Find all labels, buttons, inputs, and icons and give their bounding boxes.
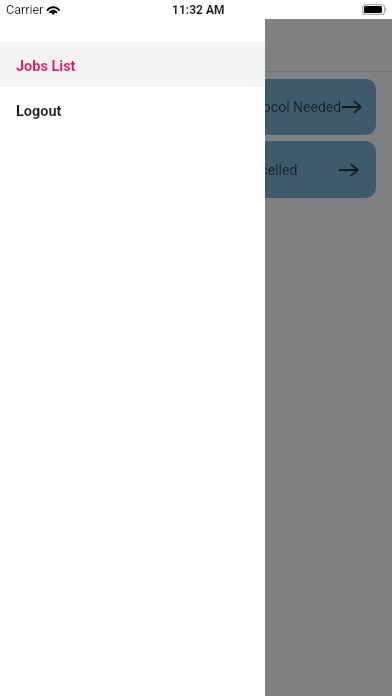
button[interactable]: Jobs List <box>0 42 265 87</box>
staticText: 11:32 AM <box>172 3 225 17</box>
button[interactable]: Logout <box>0 87 265 132</box>
staticText: Jobs List <box>16 58 76 75</box>
staticText: Logout <box>16 103 62 120</box>
button[interactable]: Cancelled <box>16 141 376 198</box>
other: Battery full <box>362 4 386 15</box>
other: Wi-Fi <box>47 3 60 15</box>
staticText: Protocol Needed <box>237 99 342 115</box>
staticText: Cancelled <box>236 162 298 178</box>
button[interactable]: Protocol Needed <box>16 79 376 135</box>
staticText: Carrier <box>6 2 44 17</box>
